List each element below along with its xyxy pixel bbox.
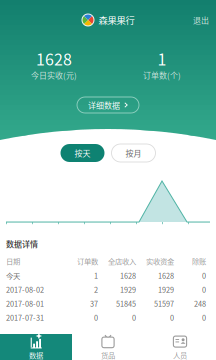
staticText: 全店收入: [108, 256, 136, 266]
staticText: 0: [94, 312, 98, 323]
staticText: 37: [90, 298, 98, 309]
button[interactable]: 货品: [72, 334, 144, 360]
staticText: 数据: [29, 350, 43, 360]
staticText: 248: [194, 298, 206, 309]
staticText: 1929: [120, 284, 136, 295]
staticText: 人员: [173, 350, 187, 360]
staticText: 1628: [120, 270, 136, 281]
staticText: 退出: [193, 14, 209, 26]
staticText: 0: [132, 312, 136, 323]
staticText: 订单数(个): [143, 69, 181, 81]
staticText: 按天: [74, 147, 90, 159]
staticText: 2017-08-01: [6, 298, 44, 309]
staticText: 森果果行: [98, 13, 134, 27]
staticText: 2: [94, 284, 98, 295]
staticText: 订单数: [77, 256, 98, 266]
staticText: 51845: [116, 298, 136, 309]
staticText: 51597: [154, 298, 174, 309]
button[interactable]: 退出: [186, 9, 216, 31]
staticText: 1: [94, 270, 98, 281]
staticText: 0: [202, 270, 206, 281]
staticText: 1628: [36, 47, 72, 70]
staticText: 货品: [101, 350, 115, 360]
staticText: 详细数据: [88, 99, 120, 111]
button[interactable]: 详细数据: [77, 97, 139, 113]
button[interactable]: 按月: [111, 144, 155, 162]
staticText: 2017-07-31: [6, 312, 44, 323]
button[interactable]: 数据: [0, 334, 72, 360]
staticText: 日期: [6, 256, 20, 266]
staticText: 1929: [158, 284, 174, 295]
staticText: 除账: [192, 256, 206, 266]
staticText: 0: [170, 312, 174, 323]
button[interactable]: 按天: [60, 144, 104, 162]
staticText: 1: [157, 47, 166, 70]
staticText: 2017-08-02: [6, 284, 44, 295]
staticText: 0: [202, 312, 206, 323]
staticText: 今天: [6, 270, 20, 281]
button[interactable]: 人员: [144, 334, 216, 360]
staticText: 按月: [125, 147, 141, 159]
staticText: 数据详情: [6, 238, 38, 250]
staticText: 0: [202, 284, 206, 295]
staticText: 今日实收(元): [31, 69, 77, 81]
staticText: 实收资金: [146, 256, 174, 266]
staticText: 1628: [158, 270, 174, 281]
